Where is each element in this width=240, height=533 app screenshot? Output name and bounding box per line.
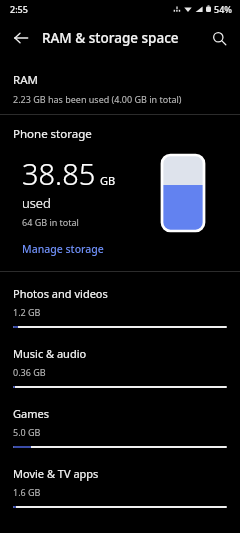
staticText: Phone storage [13,126,92,142]
button[interactable]: Music & audio [0,332,240,392]
staticText: used [22,194,51,212]
staticText: Movie & TV apps [13,466,99,481]
staticText: 5.0 GB [13,426,41,438]
staticText: Music & audio [13,346,87,361]
button[interactable]: Back [6,23,36,53]
staticText: 1.2 GB [13,306,41,318]
staticText: 2:55 [10,3,28,15]
button[interactable]: RAM [0,72,240,105]
staticText: RAM [13,72,38,88]
button[interactable]: Photos and videos [0,272,240,332]
staticText: 64 GB in total [22,216,79,228]
staticText: Photos and videos [13,286,108,301]
button[interactable]: Manage storage [22,242,104,256]
button[interactable]: Movie & TV apps [0,452,240,512]
button[interactable]: Games [0,392,240,452]
staticText: Manage storage [22,242,104,256]
staticText: Games [13,406,49,421]
other: Clock 2:55 [10,3,28,15]
staticText: 54% [214,3,232,15]
staticText: GB [100,173,116,188]
staticText: 2.23 GB has been used (4.00 GB in total) [13,93,182,105]
staticText: RAM & storage space [42,29,179,47]
button[interactable]: Search [204,23,234,53]
staticText: 38.85 [22,154,96,193]
staticText: 0.36 GB [13,366,46,378]
staticText: 1.6 GB [13,486,41,498]
